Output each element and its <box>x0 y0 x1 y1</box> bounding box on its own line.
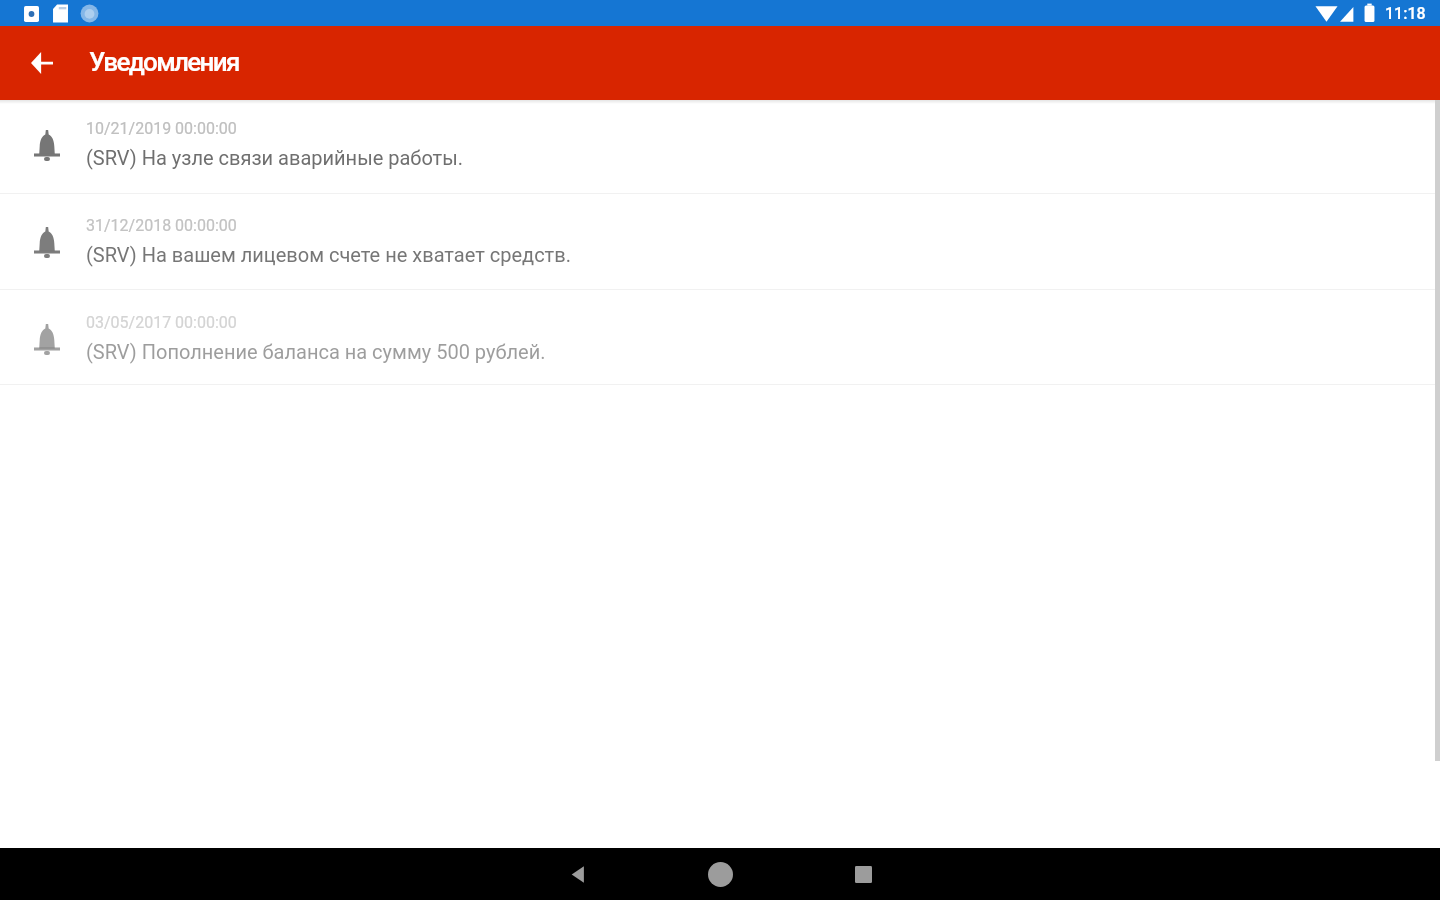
button[interactable]: 03/05/2017 00:00:00 <box>0 290 1440 384</box>
staticText: 11:18 <box>1385 4 1426 23</box>
button[interactable]: 31/12/2018 00:00:00 <box>0 194 1440 289</box>
button[interactable]: Home <box>649 848 792 900</box>
staticText: (SRV) На вашем лицевом счете не хватает … <box>86 243 571 266</box>
button[interactable]: Уведомления <box>89 47 239 77</box>
button[interactable]: Back <box>506 848 649 900</box>
staticText: 03/05/2017 00:00:00 <box>86 313 237 332</box>
staticText: 31/12/2018 00:00:00 <box>86 216 237 235</box>
staticText: (SRV) Пополнение баланса на сумму 500 ру… <box>86 340 546 363</box>
button[interactable]: Recent apps <box>792 848 935 900</box>
button[interactable]: Назад <box>18 39 66 87</box>
staticText: 10/21/2019 00:00:00 <box>86 119 237 138</box>
staticText: (SRV) На узле связи аварийные работы. <box>86 146 464 169</box>
button[interactable]: 10/21/2019 00:00:00 <box>0 100 1440 193</box>
